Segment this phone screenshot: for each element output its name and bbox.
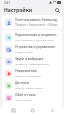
button[interactable]: Устройства и управление bbox=[2, 43, 62, 55]
staticText: Панель • Приложения bbox=[15, 74, 41, 77]
staticText: Дисплей bbox=[15, 81, 29, 85]
staticText: Темы • Значки bbox=[15, 98, 32, 101]
staticText: 9:41 bbox=[4, 1, 10, 5]
staticText: Устройства и управление bbox=[15, 45, 56, 49]
staticText: Уведомления bbox=[15, 69, 37, 73]
staticText: Профиль • Безопасность • Облако bbox=[15, 23, 58, 27]
staticText: Звонки • Экран bbox=[15, 50, 33, 53]
button[interactable]: Последние bbox=[6, 107, 20, 114]
staticText: Обои и стиль bbox=[15, 93, 36, 97]
staticText: Звуки и вибрация bbox=[15, 57, 44, 61]
button[interactable]: Учетная запись Samsung bbox=[2, 15, 62, 29]
button[interactable]: Назад bbox=[45, 107, 59, 114]
button[interactable]: Уведомления bbox=[2, 67, 62, 79]
button[interactable]: Звуки и вибрация bbox=[2, 55, 62, 67]
staticText: Wi-Fi • Bluetooth • Samsung Cloud bbox=[15, 38, 54, 41]
button[interactable]: Домой bbox=[25, 107, 39, 114]
button[interactable]: Обои и стиль bbox=[2, 91, 62, 103]
button[interactable]: Подключения и соединения bbox=[2, 31, 62, 43]
staticText: Настройки bbox=[4, 7, 33, 14]
button[interactable]: Поиск bbox=[53, 6, 61, 14]
staticText: Учетная запись Samsung bbox=[15, 17, 57, 22]
staticText: Громкость • Мелодия вызова bbox=[15, 62, 49, 65]
staticText: Яркость • Размер текста bbox=[15, 86, 43, 89]
staticText: Подключения и соединения bbox=[15, 33, 59, 37]
button[interactable]: Дисплей bbox=[2, 79, 62, 91]
